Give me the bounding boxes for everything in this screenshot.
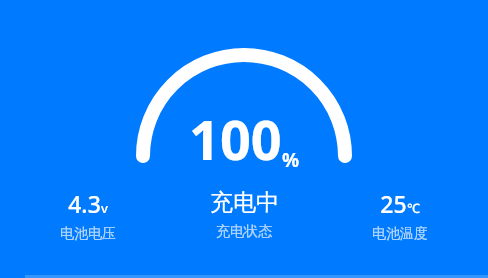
staticText: 电池电压 (60, 225, 116, 243)
button[interactable]: 充电中 (174, 188, 314, 241)
staticText: 25 (380, 188, 407, 219)
button[interactable]: 25 (330, 188, 470, 243)
staticText: 电池温度 (372, 225, 428, 243)
other: Battery level 100 percent (136, 48, 352, 166)
button[interactable]: 4.3 (18, 188, 158, 243)
staticText: 充电状态 (216, 223, 272, 241)
staticText: v (101, 199, 108, 217)
staticText: 100 (189, 102, 282, 176)
staticText: 4.3 (68, 188, 101, 219)
staticText: % (282, 147, 300, 173)
staticText: 充电中 (210, 188, 279, 217)
staticText: ℃ (407, 199, 420, 217)
